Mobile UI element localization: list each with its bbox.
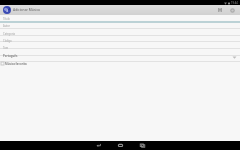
button[interactable]: Cancelar <box>226 5 239 15</box>
staticText: Código <box>3 39 12 43</box>
staticText: 19:44 <box>231 1 238 5</box>
staticText: Música favorita <box>5 62 27 66</box>
button[interactable]: Autor <box>0 22 240 29</box>
button[interactable]: Música favorita <box>0 60 240 67</box>
button[interactable]: Salvar <box>213 5 226 15</box>
button[interactable]: Código <box>0 36 240 42</box>
button[interactable]: Voltar <box>87 141 109 150</box>
staticText: Adicionar Música <box>13 7 40 11</box>
button[interactable]: Português <box>0 49 240 62</box>
staticText: Título <box>3 17 10 21</box>
button[interactable]: Recentes <box>131 141 153 150</box>
button[interactable]: Início <box>109 141 131 150</box>
staticText: Tom <box>3 46 9 50</box>
staticText: Autor <box>3 24 10 28</box>
button[interactable]: Categoria <box>0 29 240 36</box>
staticText: Português <box>3 54 18 58</box>
button[interactable]: Título <box>0 15 240 22</box>
button[interactable]: Tom <box>0 42 240 49</box>
staticText: Categoria <box>3 32 15 36</box>
